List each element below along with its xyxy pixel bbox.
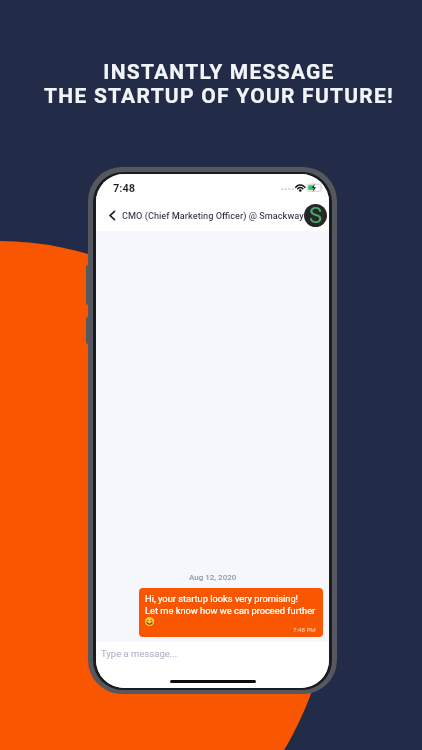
staticText: Type a message...: [101, 648, 178, 659]
button[interactable]: Hi, your startup looks very promising! L…: [139, 588, 323, 637]
staticText: Hi, your startup looks very promising! L…: [145, 593, 316, 616]
staticText: 7:48 PM: [293, 626, 316, 633]
staticText: INSTANTLY MESSAGE THE STARTUP OF YOUR FU…: [8, 60, 422, 108]
staticText: S: [309, 204, 323, 226]
button[interactable]: Back: [104, 207, 121, 224]
staticText: 7:48: [113, 182, 136, 195]
staticText: Aug 12, 2020: [189, 573, 237, 582]
button[interactable]: Profile: [304, 204, 327, 227]
staticText: CMO (Chief Marketing Officer) @ Smackway: [122, 210, 304, 221]
